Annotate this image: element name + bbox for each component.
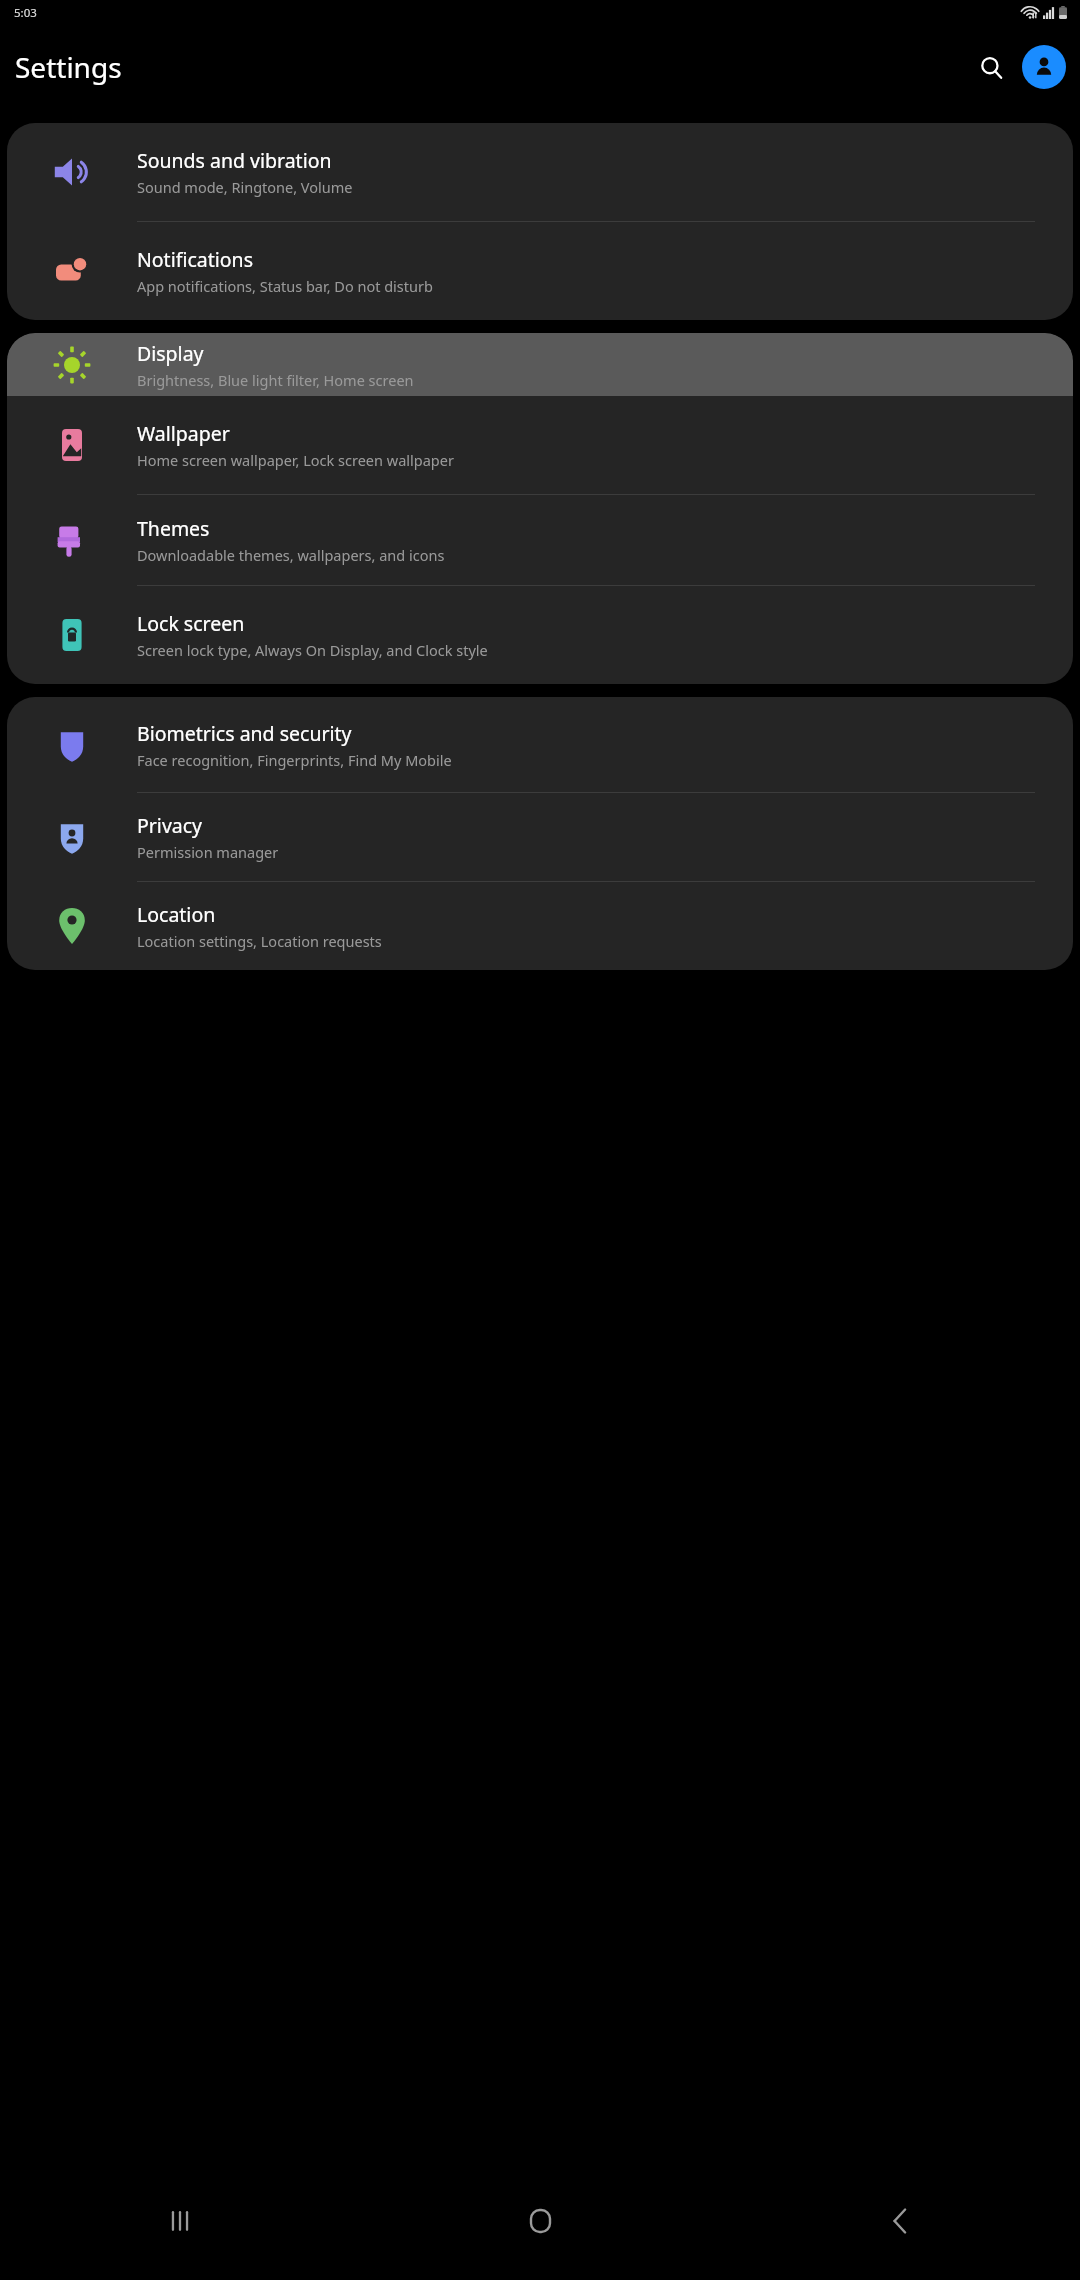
button[interactable]: Notifications bbox=[7, 222, 1073, 320]
staticText: Sounds and vibration bbox=[137, 147, 332, 174]
staticText: Location settings, Location requests bbox=[137, 931, 382, 951]
button[interactable]: Account bbox=[1022, 45, 1066, 89]
staticText: Location bbox=[137, 901, 216, 928]
button[interactable]: Recents bbox=[0, 2162, 360, 2280]
button[interactable]: Themes bbox=[7, 495, 1073, 585]
button[interactable]: Biometrics and security bbox=[7, 697, 1073, 792]
button[interactable]: Back bbox=[720, 2162, 1080, 2280]
staticText: 5:03 bbox=[14, 5, 37, 21]
staticText: Wallpaper bbox=[137, 420, 230, 447]
staticText: Sound mode, Ringtone, Volume bbox=[137, 177, 353, 197]
staticText: Biometrics and security bbox=[137, 720, 352, 747]
staticText: Display bbox=[137, 340, 204, 367]
staticText: Themes bbox=[137, 515, 210, 542]
button[interactable]: Privacy bbox=[7, 793, 1073, 881]
staticText: App notifications, Status bar, Do not di… bbox=[137, 276, 433, 296]
staticText: Brightness, Blue light filter, Home scre… bbox=[137, 370, 414, 390]
button[interactable]: Display bbox=[7, 333, 1073, 396]
staticText: Home screen wallpaper, Lock screen wallp… bbox=[137, 450, 454, 470]
staticText: Screen lock type, Always On Display, and… bbox=[137, 640, 488, 660]
button[interactable]: Sounds and vibration bbox=[7, 123, 1073, 221]
button[interactable]: Home bbox=[360, 2162, 720, 2280]
staticText: Settings bbox=[15, 48, 122, 86]
staticText: Downloadable themes, wallpapers, and ico… bbox=[137, 545, 445, 565]
button[interactable]: Location bbox=[7, 882, 1073, 970]
button[interactable]: Wallpaper bbox=[7, 396, 1073, 494]
staticText: Permission manager bbox=[137, 842, 279, 862]
button[interactable]: Search bbox=[969, 45, 1013, 89]
staticText: Privacy bbox=[137, 812, 203, 839]
staticText: Lock screen bbox=[137, 610, 245, 637]
staticText: Face recognition, Fingerprints, Find My … bbox=[137, 750, 452, 770]
staticText: Notifications bbox=[137, 246, 253, 273]
button[interactable]: Lock screen bbox=[7, 586, 1073, 684]
